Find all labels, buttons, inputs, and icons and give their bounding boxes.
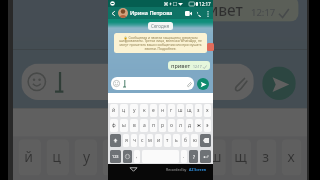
button[interactable]: н [156,139,175,176]
staticText: ц [52,148,63,167]
button[interactable]: б [182,134,189,147]
staticText: у [133,107,136,114]
button[interactable]: н [159,104,166,117]
button[interactable]: Emoji [123,150,132,163]
button[interactable]: Back [130,167,137,172]
staticText: с [141,137,144,144]
button[interactable]: й [19,139,41,176]
button[interactable]: щ [186,104,193,117]
button[interactable]: Comma [134,150,140,163]
button[interactable]: Video call [184,9,193,18]
staticText: ы [122,122,126,129]
staticText: м [148,137,152,144]
button[interactable]: я [123,134,129,147]
staticText: р [161,122,165,129]
button[interactable]: Period [181,150,187,163]
staticText: н [161,107,165,114]
button[interactable]: м [147,134,153,147]
staticText: е [136,148,145,167]
button[interactable]: ш [177,104,184,117]
button[interactable]: у [130,104,138,117]
button[interactable]: Question [189,150,198,163]
button[interactable]: э [204,119,211,132]
button[interactable]: ж [195,119,202,132]
staticText: к [111,148,119,167]
button[interactable]: з [195,104,202,117]
button[interactable]: Numbers [110,150,121,163]
button[interactable]: х [204,104,211,117]
button[interactable]: Backspace [200,134,211,147]
button[interactable]: More options [204,10,211,17]
button[interactable]: Send [197,78,209,90]
button[interactable]: ф [110,119,118,132]
staticText: г [170,107,173,114]
staticText: х [206,107,209,114]
staticText: й [112,107,116,114]
button[interactable]: о [168,119,175,132]
button[interactable]: и [155,134,162,147]
staticText: ж [197,122,201,129]
staticText: х [287,148,296,167]
button[interactable]: й [110,104,118,117]
staticText: у [83,148,91,167]
staticText: ь [175,137,178,144]
staticText: AZ Screen [189,167,207,172]
button[interactable]: Shift [110,134,121,147]
button[interactable]: ь [173,134,180,147]
staticText: ? [193,154,195,160]
button[interactable] [113,77,192,90]
staticText: 12:17 [251,5,276,19]
button[interactable]: г [181,139,201,176]
button[interactable]: ы [120,119,128,132]
button[interactable]: в [130,119,138,132]
button[interactable]: л [177,119,184,132]
button[interactable]: к [103,139,125,176]
button[interactable]: р [159,119,166,132]
button[interactable]: Enter [200,150,211,163]
staticText: з [262,148,271,167]
staticText: б [184,137,187,144]
button[interactable]: ц [120,104,128,117]
staticText: ш [178,107,183,114]
button[interactable]: к [140,104,148,117]
button[interactable]: х [282,139,301,176]
button[interactable]: ц [47,139,69,176]
staticText: привет [189,0,245,19]
staticText: е [152,107,155,114]
button[interactable] [27,64,248,100]
staticText: привет [171,62,191,69]
button[interactable]: щ [231,139,251,176]
staticText: 123 [112,154,119,159]
button[interactable]: з [257,139,276,176]
button[interactable]: с [139,134,145,147]
button[interactable]: Back [109,9,118,18]
button[interactable]: Send [262,66,296,100]
staticText: й [24,148,35,167]
staticText: т [166,137,169,144]
button[interactable]: г [168,104,175,117]
button[interactable]: Call [194,9,203,18]
button[interactable]: е [131,139,150,176]
staticText: я [125,137,128,144]
staticText: л [179,122,182,129]
staticText: . [183,153,185,160]
button[interactable]: ш [206,139,226,176]
button[interactable]: 🔒 Сообщения и звонки защищены сквозным ш… [114,33,207,53]
staticText: щ [234,148,248,167]
button[interactable]: у [75,139,97,176]
staticText: п [152,122,156,129]
button[interactable]: ю [191,134,198,147]
button[interactable]: е [150,104,157,117]
staticText: э [206,122,209,129]
staticText: щ [187,107,192,114]
staticText: д [188,122,192,129]
button[interactable]: т [164,134,171,147]
staticText: в [133,122,136,129]
button[interactable]: Recorder [207,43,214,51]
staticText: ц [122,107,126,114]
button[interactable]: д [186,119,193,132]
button[interactable]: п [150,119,157,132]
button[interactable]: а [140,119,148,132]
button[interactable]: ч [131,134,137,147]
